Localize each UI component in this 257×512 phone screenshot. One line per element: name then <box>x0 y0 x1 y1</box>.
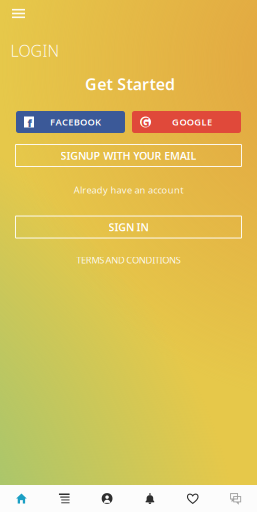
button[interactable]: Notifications <box>128 485 171 512</box>
button[interactable]: Messages <box>214 485 257 512</box>
staticText: TERMS AND CONDITIONS <box>76 254 181 266</box>
button[interactable]: Favorites <box>171 485 214 512</box>
staticText: G <box>141 114 150 130</box>
staticText: LOGIN <box>10 40 59 61</box>
staticText: SIGNUP WITH YOUR EMAIL <box>61 148 196 163</box>
button[interactable]: Menu <box>5 2 31 24</box>
button[interactable]: SIGNUP WITH YOUR EMAIL <box>15 144 241 166</box>
staticText: f <box>28 116 32 130</box>
button[interactable]: Home <box>0 485 43 512</box>
button[interactable]: SIGN IN <box>15 216 241 238</box>
button[interactable]: G <box>132 111 241 133</box>
staticText: FACEBOOK <box>50 116 101 128</box>
button[interactable]: Feed <box>43 485 86 512</box>
button[interactable]: Profile <box>86 485 128 512</box>
staticText: Already have an account <box>74 184 183 196</box>
button[interactable]: f <box>16 111 125 133</box>
button[interactable]: TERMS AND CONDITIONS <box>68 249 189 271</box>
staticText: Get Started <box>85 73 175 95</box>
staticText: GOOGLE <box>172 116 212 128</box>
staticText: SIGN IN <box>109 220 148 234</box>
